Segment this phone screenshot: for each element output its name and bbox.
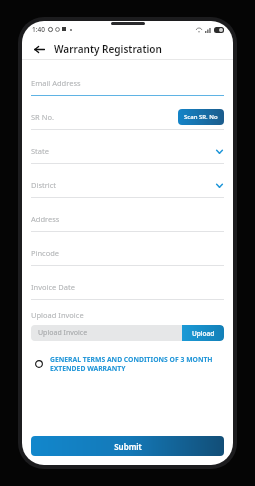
staticText: State bbox=[31, 146, 49, 156]
button[interactable]: Back bbox=[31, 41, 47, 57]
button[interactable]: Pincode bbox=[31, 241, 224, 266]
button[interactable]: GENERAL TERMS AND CONDITIONS OF 3 MONTH … bbox=[31, 355, 224, 373]
button[interactable]: Submit bbox=[31, 436, 224, 456]
staticText: Upload Invoice bbox=[31, 310, 84, 320]
staticText: Invoice Date bbox=[31, 282, 75, 292]
button[interactable]: Invoice Date bbox=[31, 275, 224, 300]
button[interactable]: Upload Invoice bbox=[31, 325, 224, 341]
staticText: Upload Invoice bbox=[38, 328, 182, 338]
other: Open District dropdown bbox=[215, 181, 224, 190]
button[interactable]: State bbox=[31, 139, 224, 164]
staticText: GENERAL TERMS AND CONDITIONS OF 3 MONTH … bbox=[50, 355, 224, 373]
staticText: Submit bbox=[114, 441, 142, 452]
button[interactable]: District bbox=[31, 173, 224, 198]
staticText: Address bbox=[31, 214, 60, 224]
button[interactable]: Email Address bbox=[31, 71, 224, 96]
button[interactable]: Upload bbox=[182, 325, 224, 341]
button[interactable]: Scan SR. No bbox=[178, 109, 224, 125]
staticText: Upload bbox=[192, 329, 215, 338]
staticText: Scan SR. No bbox=[184, 113, 218, 121]
staticText: SR No. bbox=[31, 112, 54, 122]
other: Open State dropdown bbox=[215, 147, 224, 156]
staticText: Warranty Registration bbox=[54, 42, 162, 56]
staticText: Email Address bbox=[31, 78, 81, 88]
button[interactable]: SR No. bbox=[31, 105, 224, 130]
staticText: District bbox=[31, 180, 57, 190]
button[interactable]: Address bbox=[31, 207, 224, 232]
staticText: Pincode bbox=[31, 248, 60, 258]
staticText: 1:40 bbox=[32, 25, 45, 34]
